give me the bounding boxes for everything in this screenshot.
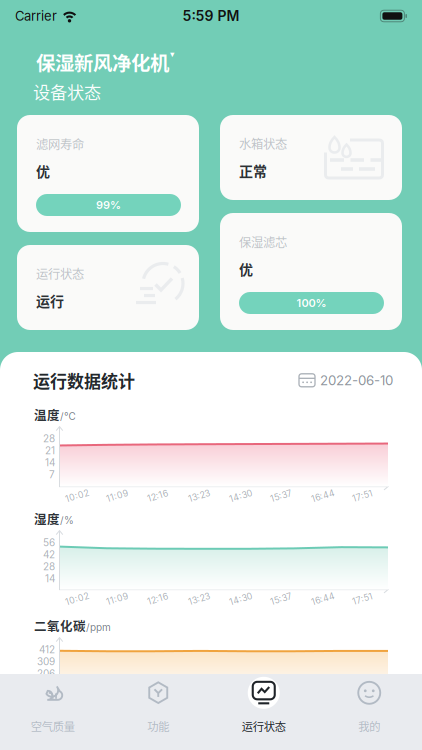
staticText: /% [60,514,74,526]
staticText: 二氧化碳 [34,617,86,635]
staticText: /℃ [60,410,76,422]
staticText: 设备状态 [33,79,101,104]
staticText: 10:02 [65,491,89,501]
staticText: 17:51 [352,491,373,501]
button[interactable]: 运行状态 [211,677,316,734]
staticText: 保湿新风净化机 [36,48,169,76]
staticText: 运行数据统计 [33,368,135,393]
staticText: 运行状态 [242,718,286,734]
staticText: 湿度 [34,510,60,528]
staticText: 16:44 [311,491,335,501]
staticText: 2022-06-10 [320,372,393,388]
staticText: 11:09 [106,594,128,604]
staticText: 7 [49,469,55,481]
staticText: 56 [43,537,55,549]
staticText: 12:16 [147,594,168,604]
staticText: Carrier [15,8,57,24]
button[interactable]: 我的 [316,677,422,734]
staticText: 206 [37,668,55,680]
staticText: 正常 [239,160,267,181]
staticText: 100% [296,296,326,310]
staticText: 运行 [36,290,64,311]
staticText: 17:51 [352,594,373,604]
button[interactable]: 滤网寿命 [17,115,199,232]
staticText: ▾ [170,49,175,59]
staticText: 28 [43,433,55,445]
staticText: 13:23 [188,491,210,501]
staticText: 412 [39,644,55,656]
staticText: 15:37 [270,594,292,604]
staticText: 空气质量 [31,718,75,734]
button[interactable]: 功能 [105,677,211,734]
button[interactable]: 保湿滤芯 [220,213,402,330]
staticText: 15:37 [270,491,292,501]
staticText: 5:59 PM [182,7,239,24]
staticText: 运行状态 [36,264,84,282]
button[interactable]: 水箱状态 [220,115,402,200]
staticText: 12:16 [147,491,168,501]
staticText: 功能 [147,718,169,734]
staticText: 21 [45,445,55,457]
staticText: 保湿滤芯 [239,233,287,251]
button[interactable]: 运行状态 [17,245,199,330]
staticText: 温度 [34,406,60,424]
staticText: 14 [45,457,55,469]
staticText: 14:30 [229,594,253,604]
staticText: 16:44 [311,594,335,604]
staticText: 99% [96,198,121,212]
staticText: 水箱状态 [239,134,287,152]
staticText: 309 [37,656,55,668]
staticText: 我的 [358,718,380,734]
staticText: 优 [36,161,50,181]
staticText: 优 [239,259,253,279]
staticText: 10:02 [65,594,89,604]
staticText: 滤网寿命 [36,135,84,153]
staticText: 14 [45,573,55,585]
button[interactable]: 空气质量 [0,677,105,734]
staticText: 14:30 [229,491,253,501]
staticText: /ppm [86,621,111,633]
staticText: 28 [43,561,55,573]
staticText: 13:23 [188,594,210,604]
staticText: 42 [43,549,55,561]
staticText: 11:09 [106,491,128,501]
button[interactable]: 2022-06-10 [299,372,393,388]
